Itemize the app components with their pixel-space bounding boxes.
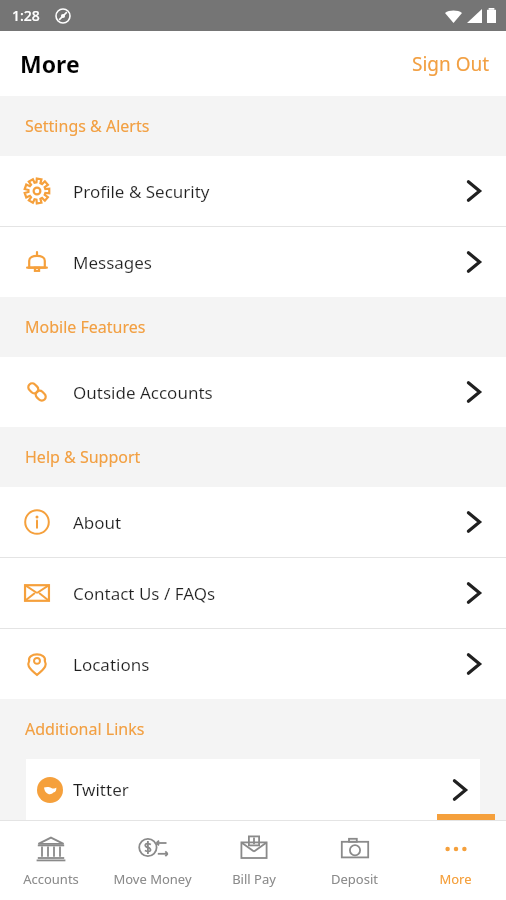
button[interactable]: Contact Us / FAQs — [0, 558, 506, 628]
staticText: Deposit — [331, 870, 378, 888]
button[interactable]: More — [405, 821, 506, 900]
staticText: Accounts — [23, 870, 79, 888]
button[interactable]: Sign Out — [396, 41, 506, 87]
staticText: More — [439, 870, 472, 888]
staticText: Locations — [73, 653, 150, 676]
button[interactable]: Messages — [0, 227, 506, 297]
button[interactable]: Bill Pay — [203, 821, 304, 900]
button[interactable]: Move Money — [102, 821, 203, 900]
staticText: Messages — [73, 251, 153, 274]
staticText: Bill Pay — [232, 870, 276, 888]
staticText: Help & Support — [25, 446, 141, 468]
staticText: Mobile Features — [25, 316, 146, 338]
staticText: Twitter — [73, 778, 129, 801]
staticText: Sign Out — [412, 51, 490, 77]
staticText: Profile & Security — [73, 180, 210, 203]
button[interactable]: Deposit — [304, 821, 405, 900]
staticText: Settings & Alerts — [25, 115, 150, 137]
button[interactable]: Locations — [0, 629, 506, 699]
staticText: Additional Links — [25, 718, 145, 740]
button[interactable]: About — [0, 487, 506, 557]
button[interactable]: Twitter — [26, 759, 480, 820]
staticText: More — [20, 48, 80, 79]
button[interactable]: Outside Accounts — [0, 357, 506, 427]
button[interactable]: Accounts — [0, 821, 102, 900]
button[interactable]: Profile & Security — [0, 156, 506, 226]
staticText: About — [73, 511, 122, 534]
staticText: 1:28 — [12, 6, 40, 25]
staticText: Contact Us / FAQs — [73, 582, 216, 605]
staticText: Move Money — [113, 870, 192, 888]
staticText: Outside Accounts — [73, 381, 213, 404]
